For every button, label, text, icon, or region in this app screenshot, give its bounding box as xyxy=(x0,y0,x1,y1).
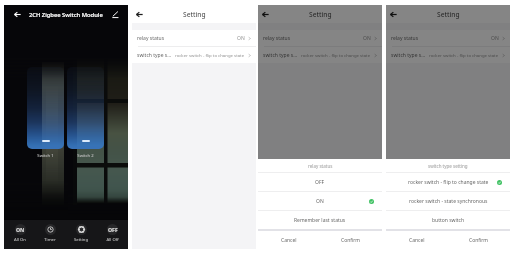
staticText: Setting xyxy=(309,10,332,19)
button[interactable]: Back xyxy=(133,8,146,21)
staticText: All On xyxy=(14,237,26,243)
staticText: rocker switch - flip to change state xyxy=(408,179,489,186)
button[interactable]: switch type s... xyxy=(258,47,382,63)
staticText: rocker switch - flip to change state xyxy=(175,52,245,58)
button[interactable] xyxy=(67,67,104,149)
button[interactable]: OFF xyxy=(100,224,124,243)
button[interactable]: relay status xyxy=(386,30,510,46)
button[interactable]: Setting xyxy=(69,224,93,243)
staticText: Switch 1 xyxy=(27,153,64,159)
button[interactable]: ON xyxy=(8,224,32,243)
staticText: OFF xyxy=(315,179,325,186)
button[interactable]: switch type s... xyxy=(132,47,256,63)
button[interactable]: OFF xyxy=(258,173,382,191)
staticText: relay status xyxy=(308,163,333,169)
staticText: Setting xyxy=(74,237,88,243)
button[interactable]: Back xyxy=(259,8,272,21)
button[interactable]: Back xyxy=(11,8,24,21)
button[interactable]: Remember last status xyxy=(258,211,382,229)
staticText: relay status xyxy=(391,35,419,42)
button[interactable]: rocker switch - flip to change state xyxy=(386,173,510,191)
button[interactable]: relay status xyxy=(132,30,256,46)
staticText: All Off xyxy=(106,237,119,243)
button[interactable]: Edit xyxy=(109,8,122,21)
button[interactable] xyxy=(27,67,64,149)
staticText: ON xyxy=(491,35,499,42)
button[interactable]: Cancel xyxy=(386,231,448,249)
button[interactable]: switch type s... xyxy=(386,47,510,63)
button[interactable]: rocker switch - state synchronous xyxy=(386,192,510,210)
button[interactable]: Back xyxy=(387,8,400,21)
staticText: Timer xyxy=(44,237,56,243)
staticText: Confirm xyxy=(341,237,361,244)
staticText: rocker switch - state synchronous xyxy=(409,198,488,205)
staticText: button switch xyxy=(432,217,465,224)
staticText: switch type setting xyxy=(428,163,468,169)
staticText: Switch 2 xyxy=(67,153,104,159)
staticText: Setting xyxy=(437,10,460,19)
staticText: 2CH Zigbee Switch Module xyxy=(29,11,103,19)
staticText: relay status xyxy=(137,35,165,42)
button[interactable]: Cancel xyxy=(258,231,320,249)
staticText: relay status xyxy=(263,35,291,42)
button[interactable]: Confirm xyxy=(448,231,510,249)
staticText: rocker switch - flip to change state xyxy=(301,52,371,58)
staticText: switch type s... xyxy=(391,52,426,59)
staticText: Cancel xyxy=(281,237,297,244)
staticText: ON xyxy=(237,35,245,42)
button[interactable]: Timer xyxy=(38,224,62,243)
staticText: switch type s... xyxy=(137,52,172,59)
staticText: ON xyxy=(316,198,324,205)
staticText: switch type s... xyxy=(263,52,298,59)
staticText: ON xyxy=(363,35,371,42)
staticText: rocker switch - flip to change state xyxy=(429,52,499,58)
button[interactable]: ON xyxy=(258,192,382,210)
button[interactable]: relay status xyxy=(258,30,382,46)
button[interactable]: Confirm xyxy=(320,231,382,249)
staticText: Setting xyxy=(183,10,206,19)
staticText: Confirm xyxy=(469,237,489,244)
button[interactable]: button switch xyxy=(386,211,510,229)
staticText: ON xyxy=(16,226,25,233)
staticText: Cancel xyxy=(409,237,425,244)
staticText: Remember last status xyxy=(294,217,346,224)
staticText: OFF xyxy=(108,226,118,233)
